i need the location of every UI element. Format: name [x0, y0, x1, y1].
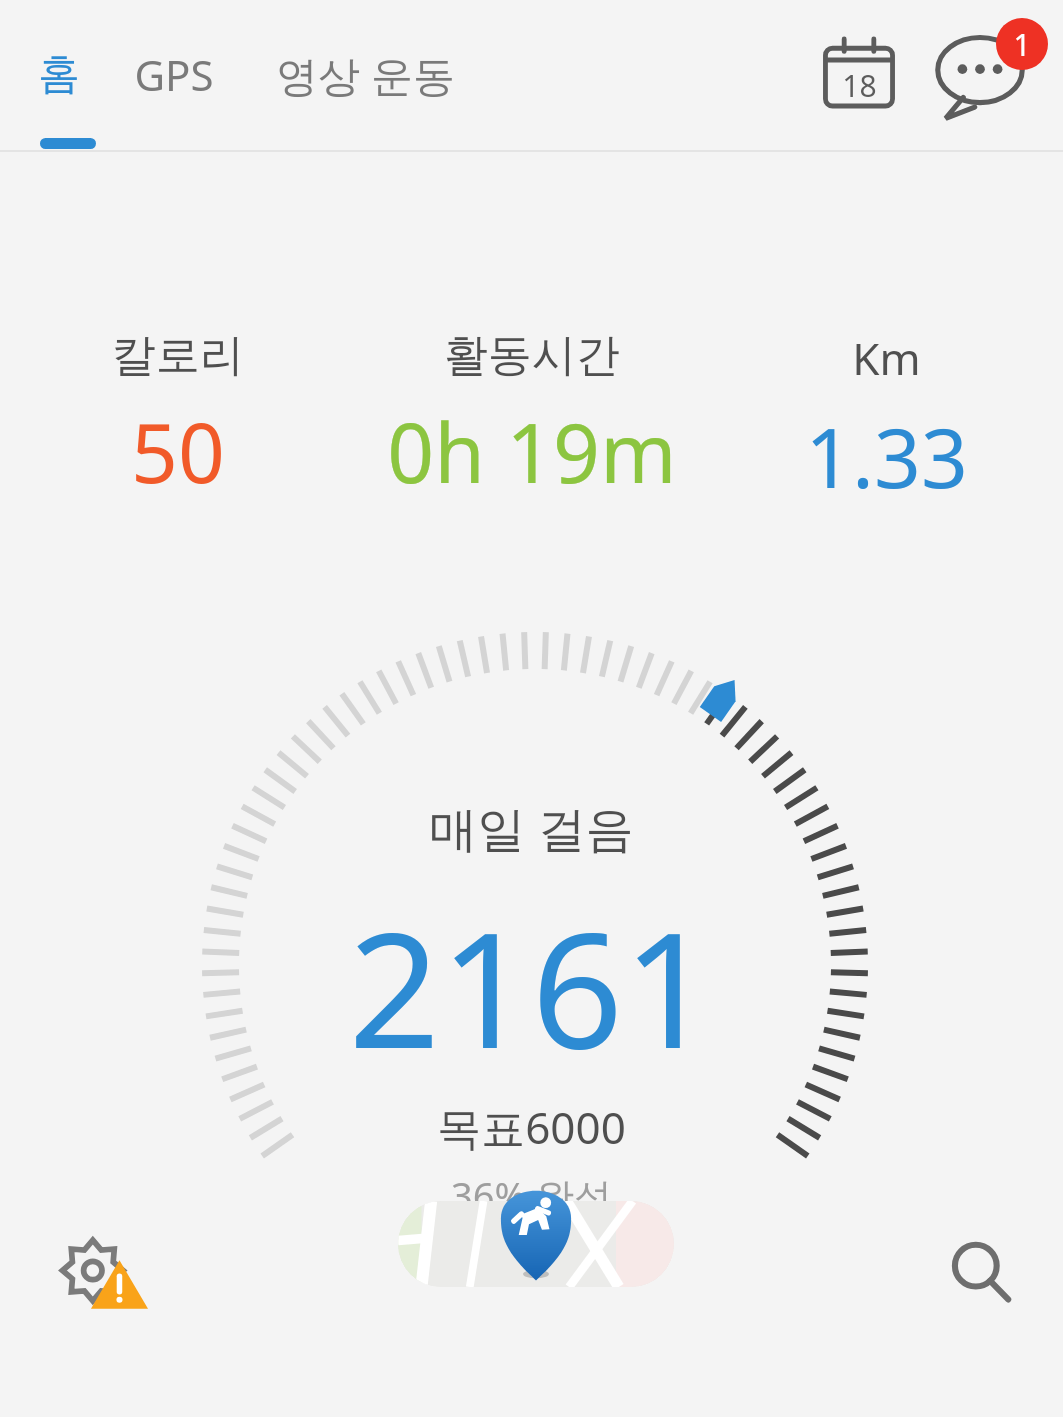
staticText: 36% 완성 [451, 1169, 612, 1221]
button[interactable]: Km [709, 328, 1063, 512]
button[interactable]: Calendar [807, 22, 911, 126]
staticText: 활동시간 [444, 328, 620, 383]
button[interactable]: 칼로리 [0, 328, 355, 507]
staticText: 2161 [348, 877, 715, 1095]
staticText: 50 [131, 395, 225, 507]
staticText: 18 [842, 65, 877, 106]
button[interactable]: GPS [134, 0, 214, 148]
staticText: 칼로리 [112, 328, 244, 383]
button[interactable]: 홈 [38, 0, 80, 148]
staticText: 매일 걸음 [429, 795, 634, 861]
button[interactable]: Start activity [396, 1192, 676, 1296]
staticText: 영상 운동 [276, 46, 455, 103]
staticText: Km [852, 328, 921, 388]
button[interactable]: Search [928, 1220, 1038, 1330]
button[interactable]: Settings [44, 1218, 160, 1334]
button[interactable]: Messages [933, 15, 1051, 133]
button[interactable]: 활동시간 [355, 328, 709, 507]
button[interactable]: 영상 운동 [276, 0, 455, 148]
staticText: 목표6000 [437, 1097, 626, 1157]
staticText: GPS [134, 46, 214, 103]
staticText: 1.33 [805, 400, 968, 512]
staticText: 홈 [38, 48, 80, 101]
staticText: 1 [1013, 24, 1031, 65]
staticText: 0h 19m [387, 395, 677, 507]
